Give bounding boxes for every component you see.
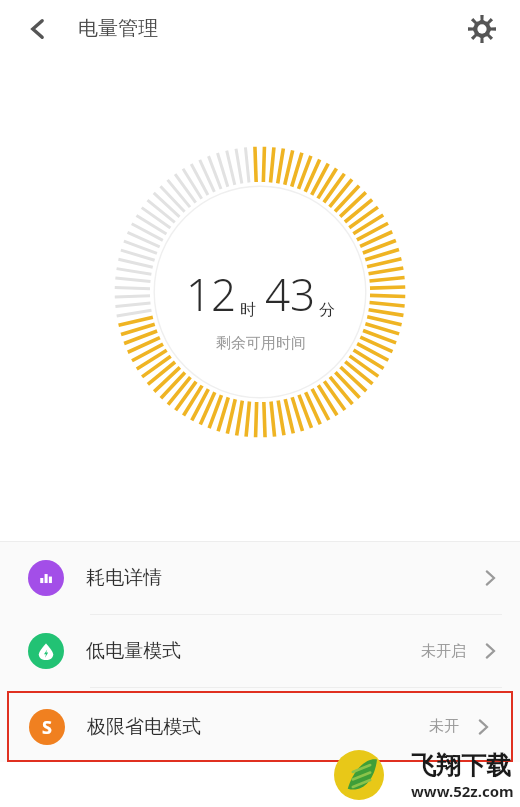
- button[interactable]: Settings: [458, 5, 506, 53]
- staticText: 未开: [429, 717, 459, 736]
- staticText: 分: [319, 300, 335, 320]
- staticText: 耗电详情: [86, 566, 162, 590]
- staticText: S: [42, 715, 52, 740]
- staticText: 12: [186, 264, 237, 324]
- staticText: 极限省电模式: [87, 715, 201, 739]
- staticText: www.52z.com: [411, 781, 514, 801]
- staticText: 剩余可用时间: [216, 334, 306, 353]
- staticText: 时: [240, 300, 256, 320]
- button[interactable]: S: [7, 691, 513, 762]
- staticText: 电量管理: [78, 16, 158, 41]
- button[interactable]: 耗电详情: [0, 542, 520, 614]
- staticText: 低电量模式: [86, 639, 181, 663]
- button[interactable]: 低电量模式: [0, 615, 520, 687]
- staticText: 43: [265, 264, 316, 324]
- staticText: 飞翔下载: [411, 750, 511, 781]
- button[interactable]: Back: [14, 5, 62, 53]
- staticText: 未开启: [421, 642, 466, 661]
